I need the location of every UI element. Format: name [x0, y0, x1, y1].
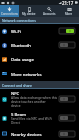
button[interactable]: Bluetooth	[0, 38, 79, 52]
button[interactable]: Toggle NFC	[59, 96, 75, 102]
button[interactable]: NFC	[0, 89, 79, 109]
staticText: Bluetooth	[11, 42, 31, 48]
button[interactable]: More	[59, 5, 79, 17]
button[interactable]: Toggle Wi-Fi	[59, 28, 75, 34]
button[interactable]: Toggle Nearby devices	[59, 131, 75, 137]
staticText: Nearby devices	[11, 131, 42, 137]
button[interactable]: Accounts	[39, 5, 59, 17]
staticText: NFC	[11, 90, 20, 96]
staticText: More networks	[11, 71, 42, 77]
button[interactable]: Data usage	[0, 52, 79, 66]
staticText: Allow data exchange when this device tou…	[11, 96, 58, 108]
staticText: Data usage	[11, 56, 34, 62]
staticText: Accounts	[43, 12, 56, 16]
button[interactable]: Connections	[0, 5, 19, 17]
button[interactable]: S Beam	[0, 109, 79, 127]
button[interactable]: Nearby devices	[0, 127, 79, 140]
staticText: My device	[22, 12, 36, 16]
staticText: 21:17	[62, 0, 74, 5]
button[interactable]: My device	[19, 5, 39, 17]
button[interactable]: Wi-Fi	[0, 24, 79, 38]
staticText: S Beam	[11, 111, 27, 117]
staticText: More	[65, 12, 73, 16]
staticText: Network connections	[2, 18, 36, 23]
button[interactable]: More networks	[0, 66, 79, 81]
staticText: Connect and share	[2, 83, 32, 88]
staticText: Connections	[1, 12, 18, 16]
button[interactable]: Toggle S Beam	[59, 115, 75, 121]
button[interactable]: Toggle Bluetooth	[59, 42, 75, 48]
staticText: Send files via NFC and Wi-Fi Direct	[11, 117, 53, 125]
staticText: Wi-Fi	[11, 28, 21, 34]
